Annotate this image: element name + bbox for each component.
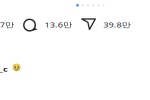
staticText: _c [0,64,7,74]
button[interactable]: 13.6만 [22,17,73,33]
staticText: 7만 [2,20,13,29]
button[interactable]: 7만 [0,20,14,30]
button[interactable]: _c [0,64,9,74]
button[interactable]: 39.8만 [81,17,132,32]
staticText: 🥹 [12,63,21,71]
staticText: 13.6만 [48,20,69,29]
staticText: 39.8만 [107,20,128,29]
